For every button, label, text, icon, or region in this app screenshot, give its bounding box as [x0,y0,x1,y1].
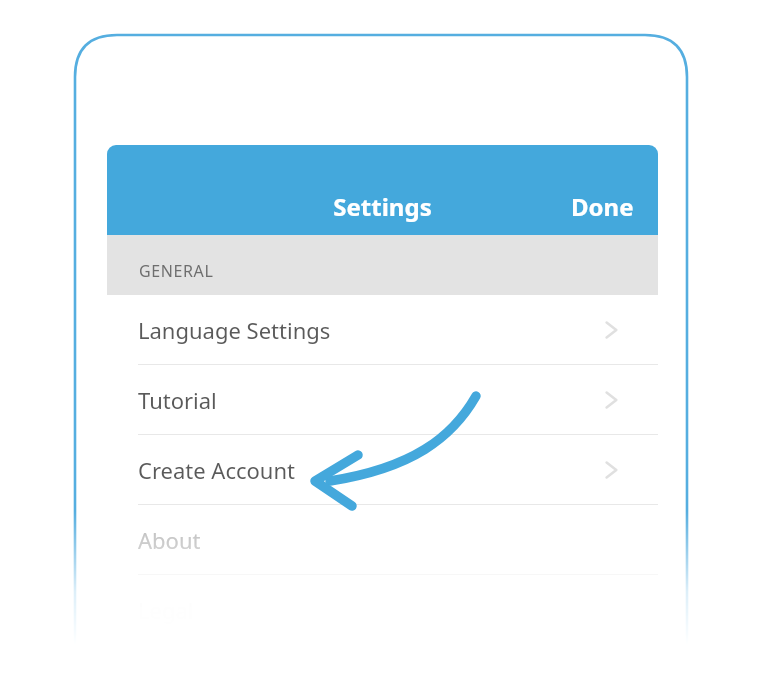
staticText: Language Settings [138,315,331,345]
button[interactable]: Create Account [107,435,658,504]
button[interactable]: Language Settings [107,295,658,364]
other: Open Tutorial [600,389,622,411]
staticText: GENERAL [139,260,214,282]
staticText: Tutorial [138,385,217,415]
button[interactable]: Done [547,186,658,235]
other: Open Create Account [600,459,622,481]
staticText: About [138,525,201,555]
button[interactable]: About [107,505,658,574]
other: Open Language Settings [600,319,622,341]
staticText: Done [571,190,634,223]
staticText: Create Account [138,455,295,485]
staticText: Settings [333,190,432,223]
button[interactable]: Tutorial [107,365,658,434]
